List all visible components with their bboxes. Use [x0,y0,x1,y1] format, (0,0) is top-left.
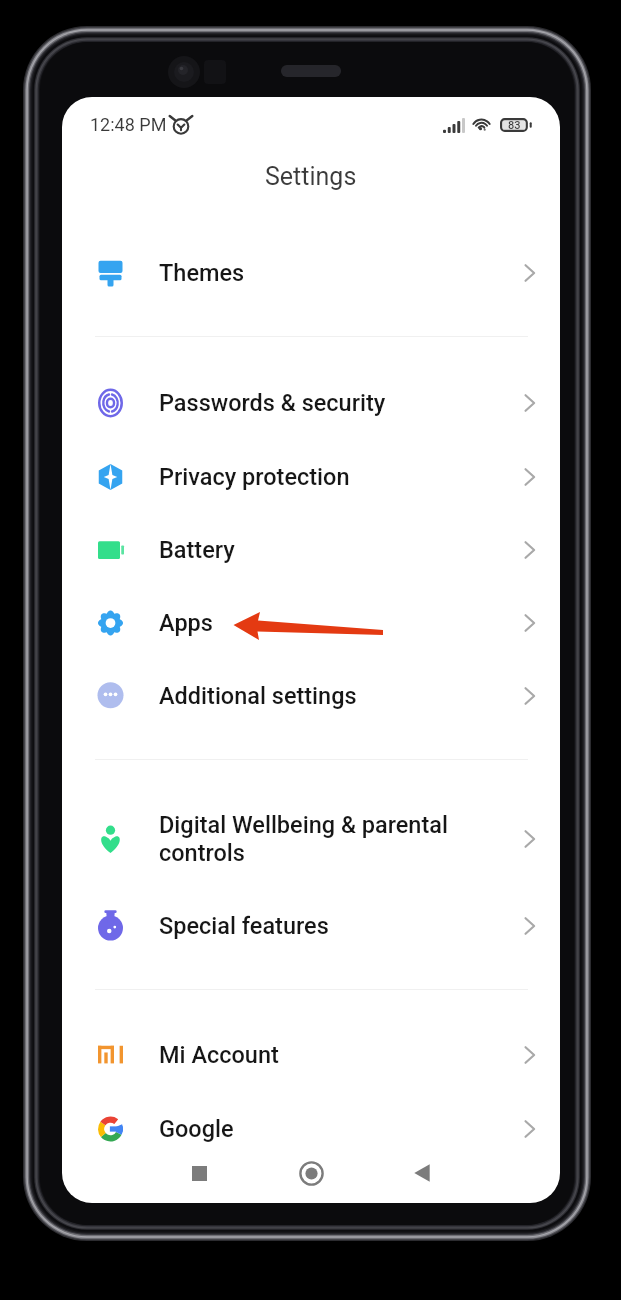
button[interactable]: Battery [62,513,560,586]
staticText: Themes [159,259,524,287]
staticText: 83 [508,119,521,132]
staticText: Digital Wellbeing & parental controls [159,811,524,867]
button[interactable]: Mi Account [62,1018,560,1091]
button[interactable]: Home [285,1147,337,1199]
button[interactable]: Google [62,1092,560,1165]
staticText: Passwords & security [159,389,524,417]
staticText: Special features [159,912,524,940]
staticText: Battery [159,536,524,564]
staticText: Mi Account [159,1041,524,1069]
staticText: Google [159,1115,524,1143]
staticText: 12:48 PM [90,114,167,134]
button[interactable]: Digital Wellbeing & parental controls [62,799,560,879]
button[interactable]: Additional settings [62,659,560,732]
button[interactable]: Privacy protection [62,440,560,513]
button[interactable]: Back [396,1147,448,1199]
button[interactable]: Themes [62,236,560,309]
staticText: Privacy protection [159,463,524,491]
button[interactable]: Apps [62,586,560,659]
button[interactable]: Passwords & security [62,366,560,439]
button[interactable]: Special features [62,889,560,962]
staticText: Settings [265,162,357,191]
staticText: Additional settings [159,682,524,710]
staticText: Apps [159,609,524,637]
button[interactable]: Recent apps [173,1147,225,1199]
